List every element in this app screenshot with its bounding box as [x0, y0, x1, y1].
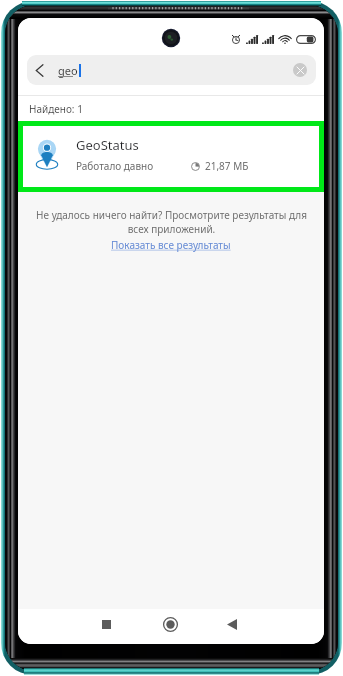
- button[interactable]: GeoStatus: [23, 126, 319, 187]
- staticText: geo: [58, 63, 78, 78]
- staticText: Показать все результаты: [111, 238, 231, 252]
- button[interactable]: Clear search: [293, 63, 307, 77]
- other: Back: [35, 64, 44, 77]
- button[interactable]: Показать все результаты: [111, 238, 231, 252]
- button[interactable]: Back: [27, 55, 316, 85]
- button[interactable]: Home: [156, 610, 185, 639]
- button[interactable]: Recent apps: [92, 610, 121, 639]
- staticText: Не удалось ничего найти? Просмотрите рез…: [33, 208, 310, 236]
- staticText: Найдено: 1: [29, 102, 83, 116]
- staticText: 21,87 МБ: [205, 159, 249, 173]
- button[interactable]: Back: [217, 610, 246, 639]
- staticText: Работало давно: [76, 159, 154, 173]
- staticText: GeoStatus: [76, 136, 139, 154]
